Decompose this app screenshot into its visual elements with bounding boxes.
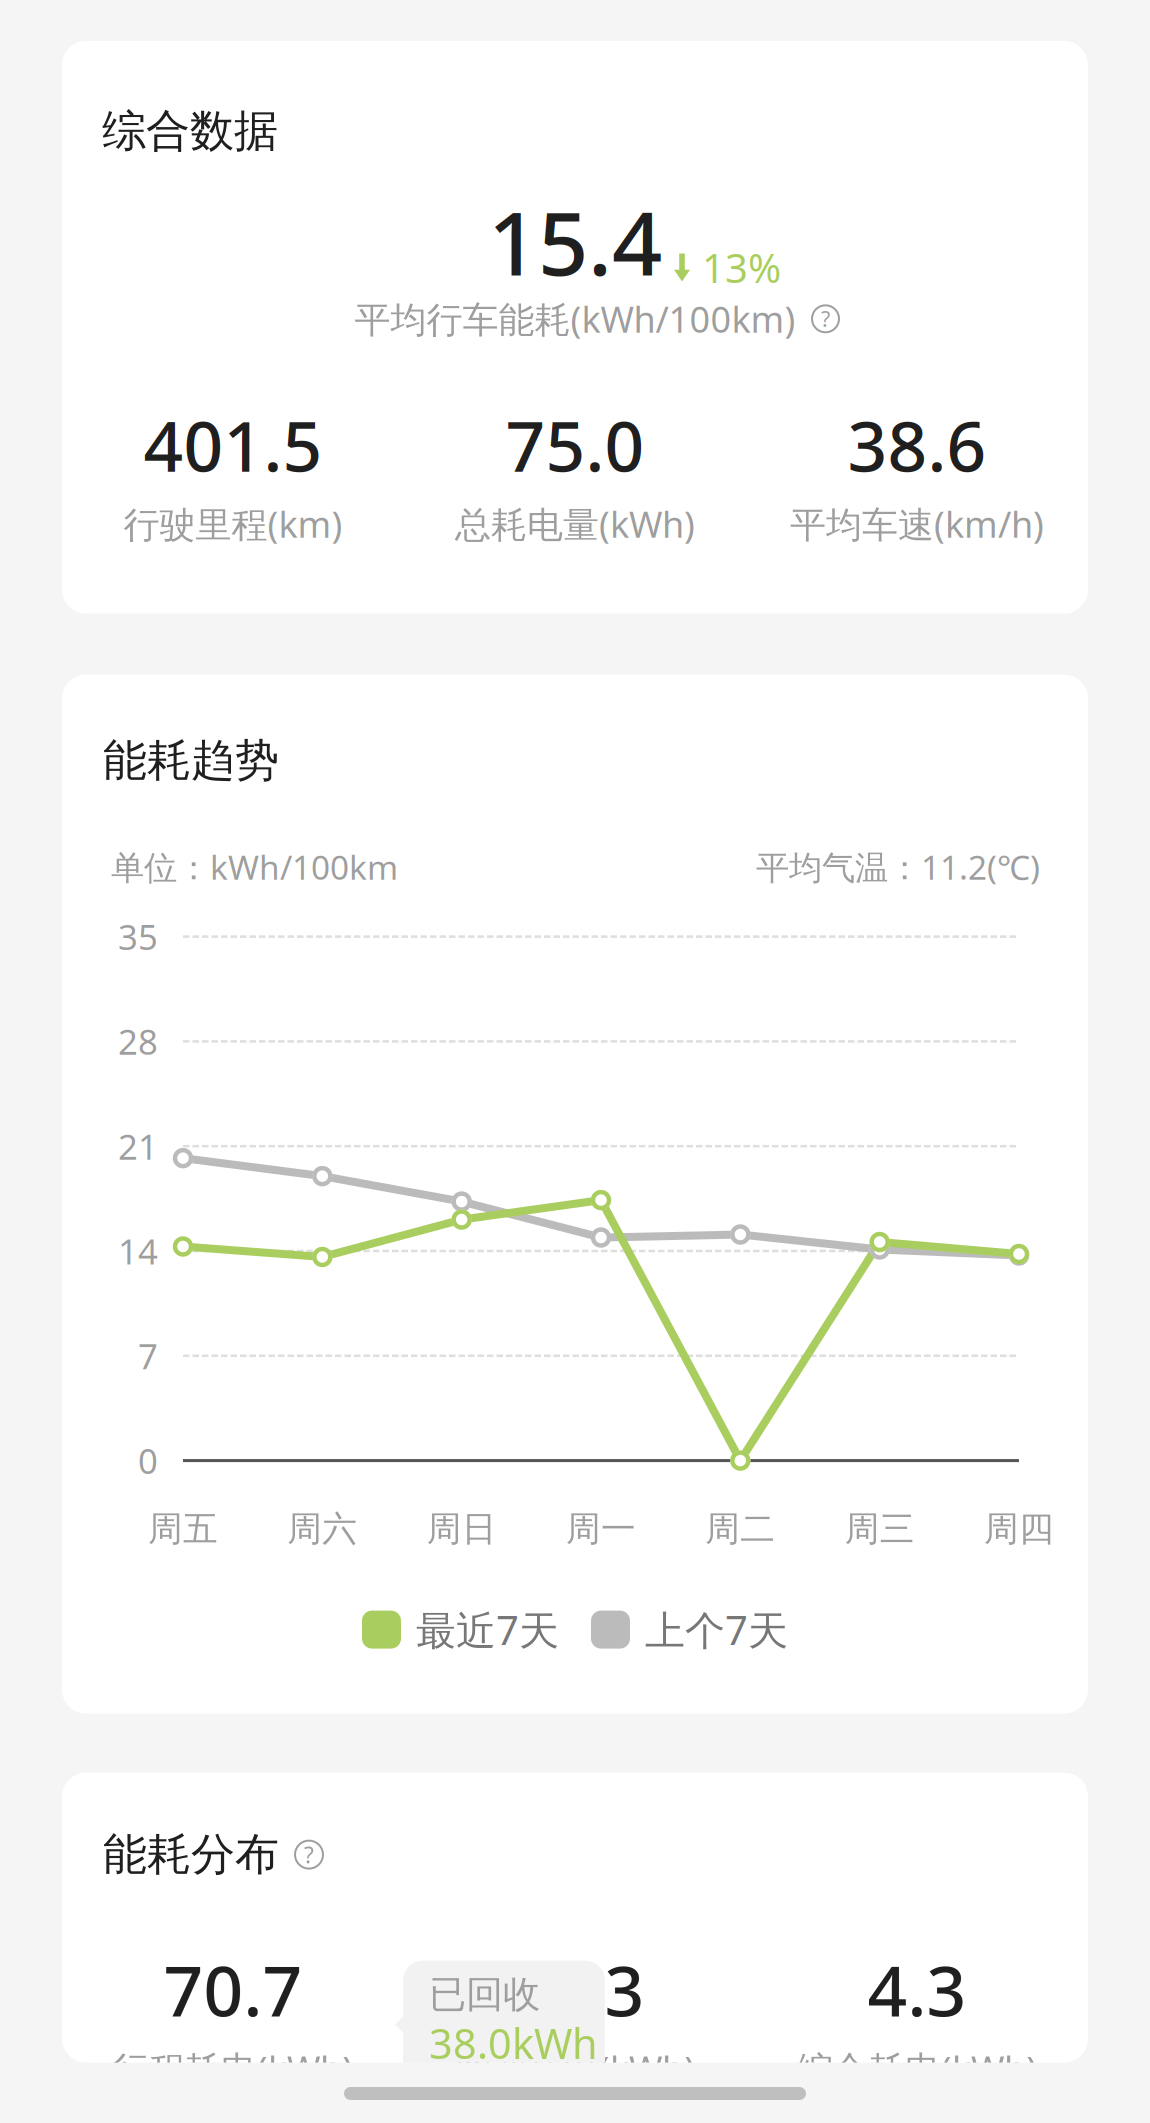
staticText: 38.0kWh	[429, 2015, 598, 2070]
staticText: 上个7天	[645, 1603, 788, 1656]
staticText: 综合耗电(kWh)	[797, 2045, 1037, 2092]
staticText: 401.5	[143, 399, 322, 491]
staticText: 行程耗电(kWh)	[113, 2045, 353, 2092]
staticText: 平均气温：11.2(℃)	[756, 845, 1040, 889]
staticText: 综合数据	[102, 104, 278, 158]
staticText: 行驶里程(km)	[123, 500, 342, 548]
staticText: 75.0	[505, 399, 644, 491]
button[interactable]: 平均行车能耗说明	[812, 305, 839, 332]
button[interactable]: 综合数据	[62, 41, 1088, 614]
staticText: 21	[118, 1123, 158, 1169]
staticText: 周日	[427, 1508, 497, 1550]
staticText: 35	[118, 914, 158, 960]
staticText: 总耗电量(kWh)	[455, 500, 695, 548]
button[interactable]: 能耗分布	[62, 1773, 1088, 2063]
staticText: 周三	[845, 1508, 915, 1550]
staticText: 70.7	[163, 1944, 302, 2036]
staticText: 能耗分布	[103, 1828, 279, 1882]
staticText: 周二	[705, 1508, 775, 1550]
staticText: 已回收	[429, 1972, 540, 2017]
staticText: ?	[821, 305, 830, 333]
staticText: 4.3	[867, 1944, 966, 2036]
staticText: 周四	[984, 1508, 1054, 1550]
staticText: 周六	[287, 1508, 357, 1550]
button[interactable]: 能耗分布说明	[295, 1841, 323, 1869]
staticText: 平均行车能耗(kWh/100km)	[354, 295, 795, 343]
staticText: 23.3	[505, 1944, 644, 2036]
staticText: 14	[118, 1228, 158, 1274]
staticText: 周一	[566, 1508, 636, 1550]
staticText: 13%	[702, 241, 781, 294]
staticText: 空调耗电(kWh)	[455, 2045, 695, 2092]
staticText: 7	[138, 1333, 158, 1379]
button[interactable]: 能耗趋势	[62, 675, 1088, 1714]
staticText: 能耗趋势	[103, 734, 279, 788]
staticText: 最近7天	[416, 1603, 559, 1656]
staticText: 0	[138, 1438, 158, 1484]
staticText: 单位：kWh/100km	[111, 845, 398, 889]
staticText: 28	[118, 1018, 158, 1064]
staticText: 平均车速(km/h)	[790, 500, 1044, 548]
staticText: 周五	[148, 1508, 218, 1550]
staticText: 15.4	[488, 183, 662, 300]
staticText: 38.6	[847, 399, 986, 491]
staticText: ?	[304, 1840, 314, 1870]
